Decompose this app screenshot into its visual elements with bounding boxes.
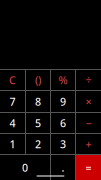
staticText: 0	[22, 160, 28, 175]
button[interactable]: 1	[0, 134, 25, 154]
staticText: +	[85, 137, 91, 151]
button[interactable]: −	[76, 113, 101, 133]
button[interactable]: 6	[51, 113, 75, 133]
button[interactable]: 7	[0, 91, 25, 112]
staticText: %	[58, 73, 67, 87]
button[interactable]: ÷	[76, 70, 101, 90]
staticText: 6	[60, 116, 66, 130]
button[interactable]: =	[76, 155, 101, 180]
button[interactable]: %	[51, 70, 75, 90]
button[interactable]: C	[0, 70, 25, 90]
button[interactable]: 2	[26, 134, 50, 154]
staticText: 1	[9, 137, 15, 151]
staticText: 3	[60, 137, 66, 151]
staticText: 9	[60, 94, 66, 109]
staticText: C	[9, 73, 16, 87]
staticText: 8	[35, 94, 41, 109]
staticText: .	[61, 160, 64, 175]
staticText: ()	[35, 73, 41, 87]
button[interactable]: 4	[0, 113, 25, 133]
staticText: ×	[85, 94, 91, 109]
button[interactable]: ()	[26, 70, 50, 90]
staticText: =	[85, 160, 91, 175]
staticText: −	[85, 116, 91, 130]
button[interactable]: +	[76, 134, 101, 154]
button[interactable]: 3	[51, 134, 75, 154]
button[interactable]: 9	[51, 91, 75, 112]
button[interactable]: 0	[0, 155, 50, 180]
staticText: ÷	[85, 73, 91, 87]
button[interactable]: .	[51, 155, 75, 180]
button[interactable]: 8	[26, 91, 50, 112]
button[interactable]: ×	[76, 91, 101, 112]
staticText: 4	[9, 116, 15, 130]
staticText: 2	[35, 137, 41, 151]
button[interactable]: 5	[26, 113, 50, 133]
staticText: 7	[9, 94, 15, 109]
staticText: 5	[35, 116, 41, 130]
